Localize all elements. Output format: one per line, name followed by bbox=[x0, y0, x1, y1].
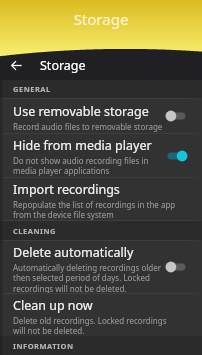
button[interactable]: Hide from media player bbox=[0, 134, 202, 177]
button[interactable]: Navigate up bbox=[4, 53, 28, 77]
button[interactable]: Use removable storage bbox=[0, 99, 202, 133]
staticText: Delete old recordings. Locked recordings… bbox=[13, 315, 176, 336]
button[interactable]: Import recordings bbox=[0, 178, 202, 220]
button[interactable]: Delete automatically bbox=[0, 241, 202, 293]
button[interactable]: Clean up now bbox=[0, 294, 202, 336]
staticText: CLEANING bbox=[13, 226, 56, 236]
staticText: Use removable storage bbox=[13, 103, 149, 120]
staticText: Import recordings bbox=[13, 181, 120, 198]
staticText: Clean up now bbox=[13, 297, 93, 314]
staticText: Hide from media player bbox=[13, 137, 152, 154]
staticText: GENERAL bbox=[13, 84, 51, 94]
staticText: INFORMATION bbox=[13, 341, 74, 351]
staticText: Storage bbox=[0, 9, 202, 29]
staticText: Storage bbox=[40, 57, 86, 74]
staticText: Delete automatically bbox=[13, 244, 134, 261]
staticText: Repopulate the list of recordings in the… bbox=[13, 199, 176, 220]
staticText: Do not show audio recording files in med… bbox=[13, 155, 165, 177]
staticText: Automatically deleting recordings older … bbox=[13, 262, 165, 293]
staticText: Record audio files to removable storage bbox=[13, 121, 163, 132]
